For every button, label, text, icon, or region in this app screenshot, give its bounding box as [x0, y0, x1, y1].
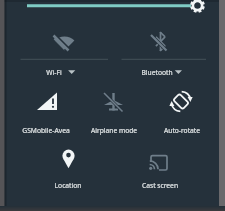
button[interactable] — [116, 28, 206, 78]
staticText: Airplane mode — [69, 126, 159, 135]
button[interactable] — [20, 28, 110, 78]
staticText: GSMobile-Avea — [1, 126, 91, 135]
staticText: Cast screen — [115, 181, 205, 190]
button[interactable] — [128, 144, 190, 196]
button[interactable] — [150, 86, 212, 138]
staticText: Auto-rotate — [137, 126, 225, 135]
staticText: Bluetooth — [112, 68, 202, 77]
staticText: Wi-Fi — [9, 68, 99, 77]
button[interactable] — [16, 86, 78, 138]
button[interactable] — [36, 144, 98, 196]
staticText: Location — [23, 181, 113, 190]
button[interactable] — [82, 86, 144, 138]
button[interactable] — [20, 0, 210, 14]
